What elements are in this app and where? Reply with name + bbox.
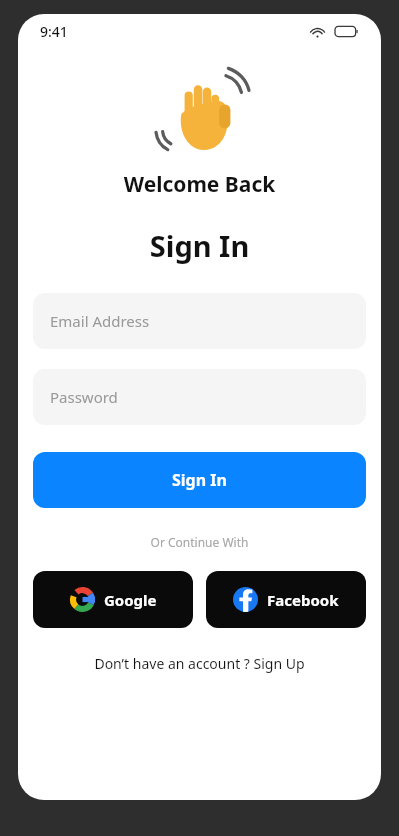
staticText: Welcome Back (18, 170, 381, 199)
staticText: Password (50, 387, 118, 407)
button[interactable]: Email Address (33, 293, 366, 349)
staticText: Sign In (18, 226, 381, 265)
staticText: Google (104, 590, 157, 610)
button[interactable]: Don’t have an account ? Sign Up (18, 654, 381, 673)
staticText: 9:41 (40, 22, 68, 41)
staticText: Facebook (267, 590, 339, 610)
button[interactable]: Google (33, 571, 193, 628)
staticText: Sign In (172, 469, 227, 491)
button[interactable]: Password (33, 369, 366, 425)
button[interactable]: Sign In (33, 452, 366, 508)
staticText: Or Continue With (18, 534, 381, 550)
button[interactable]: Facebook (206, 571, 366, 628)
staticText: Email Address (50, 311, 150, 331)
